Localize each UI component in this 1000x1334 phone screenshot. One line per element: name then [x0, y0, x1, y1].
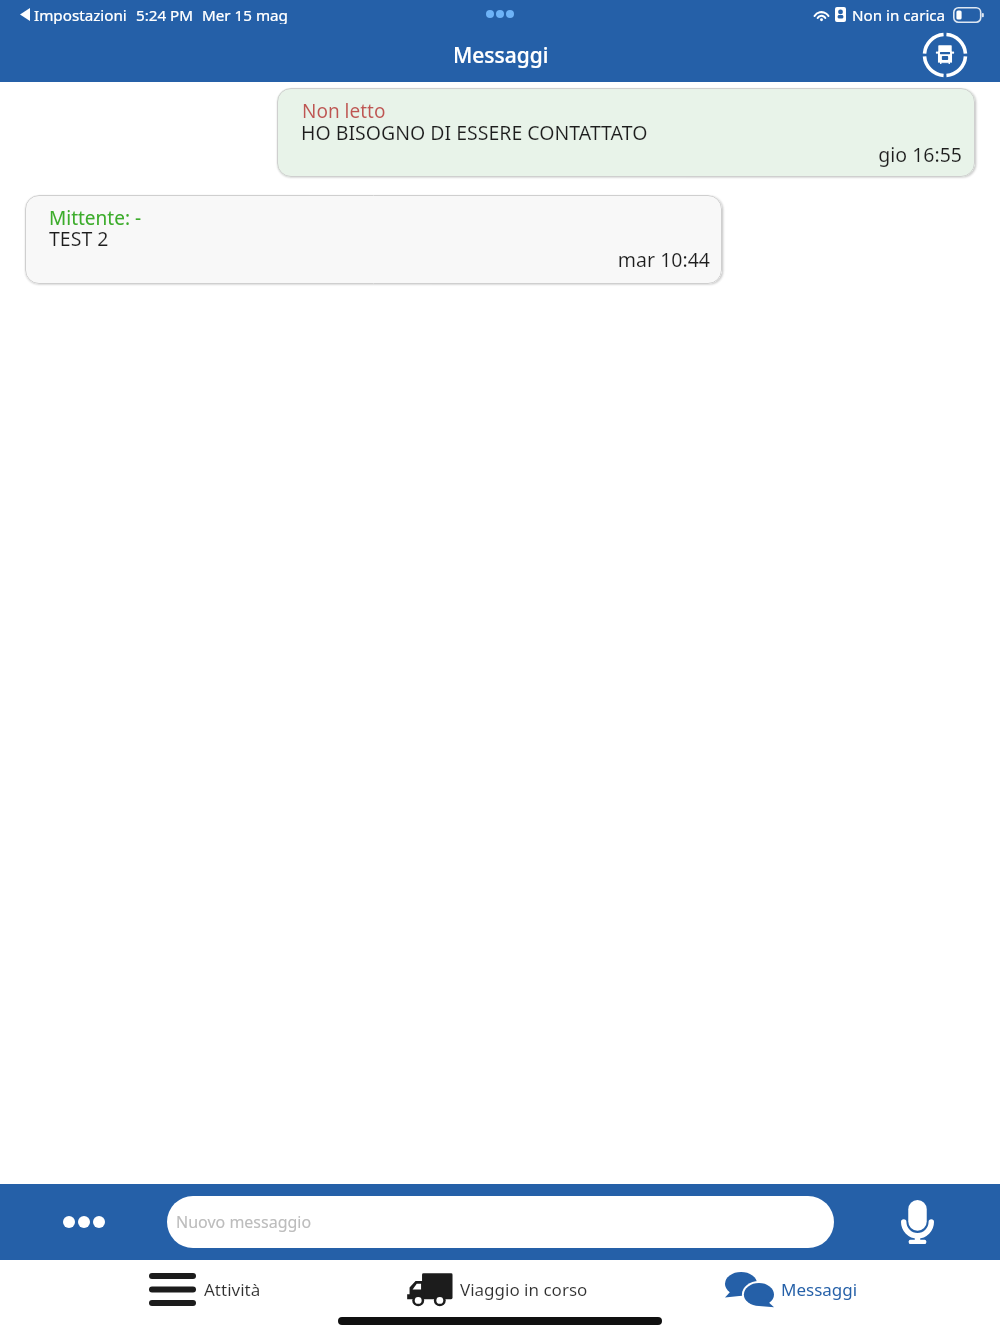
button[interactable]: Veicolo: [919, 29, 971, 81]
staticText: HO BISOGNO DI ESSERE CONTATTATO: [301, 119, 648, 146]
button[interactable]: Attività: [0, 1263, 333, 1315]
staticText: TEST 2: [49, 225, 109, 252]
button[interactable]: Registra messaggio vocale: [834, 1184, 1000, 1260]
staticText: Messaggi: [781, 1278, 858, 1301]
staticText: mar 10:44: [25, 246, 710, 273]
staticText: Attività: [204, 1278, 261, 1301]
staticText: gio 16:55: [277, 141, 962, 168]
staticText: Non letto: [302, 98, 386, 124]
button[interactable]: Nuovo messaggio: [167, 1196, 834, 1248]
staticText: Viaggio in corso: [460, 1278, 588, 1301]
staticText: Impostazioni: [34, 5, 127, 24]
staticText: 5:24 PM: [136, 5, 194, 24]
button[interactable]: Altre opzioni: [0, 1184, 167, 1260]
button[interactable]: Mittente: -: [25, 195, 722, 284]
button[interactable]: Messaggi: [667, 1263, 1000, 1315]
staticText: Nuovo messaggio: [176, 1211, 312, 1233]
button[interactable]: Viaggio in corso: [333, 1263, 667, 1315]
staticText: Mittente: -: [49, 205, 142, 231]
staticText: Messaggi: [453, 41, 549, 70]
staticText: Non in carica: [852, 5, 946, 24]
button[interactable]: Non letto: [277, 88, 975, 177]
staticText: Mer 15 mag: [202, 5, 288, 24]
